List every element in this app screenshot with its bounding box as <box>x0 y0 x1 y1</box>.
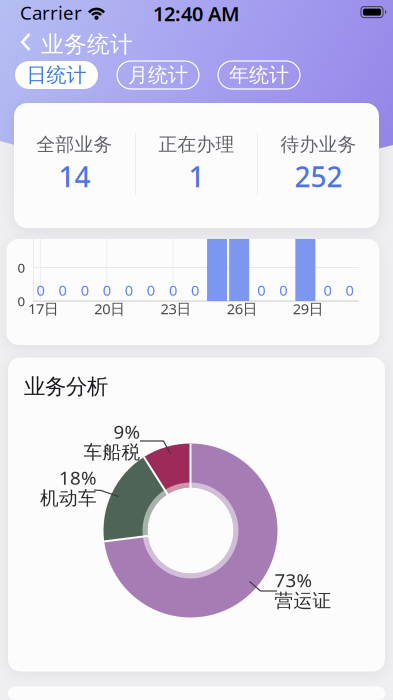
staticText: 正在办理 <box>158 133 234 156</box>
staticText: 252 <box>294 158 342 195</box>
staticText: 0 <box>17 259 25 276</box>
staticText: 23日 <box>160 299 191 318</box>
staticText: 全部业务 <box>36 133 112 156</box>
staticText: 机动车 <box>40 487 97 510</box>
staticText: 业务分析 <box>24 373 108 400</box>
staticText: 20日 <box>94 299 125 318</box>
button[interactable]: 日统计 <box>15 61 98 89</box>
button[interactable]: 返回 业务统计 <box>20 28 133 56</box>
staticText: 0 <box>147 280 155 300</box>
staticText: 0 <box>323 280 331 300</box>
button[interactable]: 年统计 <box>218 61 300 89</box>
staticText: 0 <box>36 280 44 300</box>
staticText: 17日 <box>28 299 59 318</box>
staticText: 年统计 <box>229 63 289 87</box>
staticText: Carrier <box>20 0 82 25</box>
staticText: 9% <box>113 419 140 444</box>
staticText: 0 <box>59 280 67 300</box>
staticText: 待办业务 <box>280 133 356 156</box>
staticText: 18% <box>59 465 97 490</box>
staticText: 0 <box>257 280 265 300</box>
staticText: 0 <box>279 280 287 300</box>
staticText: 14 <box>58 158 90 195</box>
staticText: 0 <box>169 280 177 300</box>
button[interactable]: 月统计 <box>117 61 199 89</box>
staticText: 0 <box>103 280 111 300</box>
staticText: 0 <box>81 280 89 300</box>
staticText: 73% <box>274 568 312 592</box>
staticText: 12:40 AM <box>153 0 240 27</box>
staticText: 车船税 <box>83 441 140 464</box>
staticText: 0 <box>17 292 25 310</box>
staticText: 0 <box>191 280 199 300</box>
staticText: 26日 <box>227 299 258 318</box>
staticText: 0 <box>345 280 353 300</box>
staticText: 1 <box>188 158 204 195</box>
staticText: 日统计 <box>26 63 86 87</box>
staticText: 月统计 <box>128 63 188 87</box>
staticText: 营运证 <box>274 589 331 612</box>
staticText: 29日 <box>293 299 324 318</box>
staticText: 业务统计 <box>41 31 133 58</box>
staticText: 0 <box>125 280 133 300</box>
